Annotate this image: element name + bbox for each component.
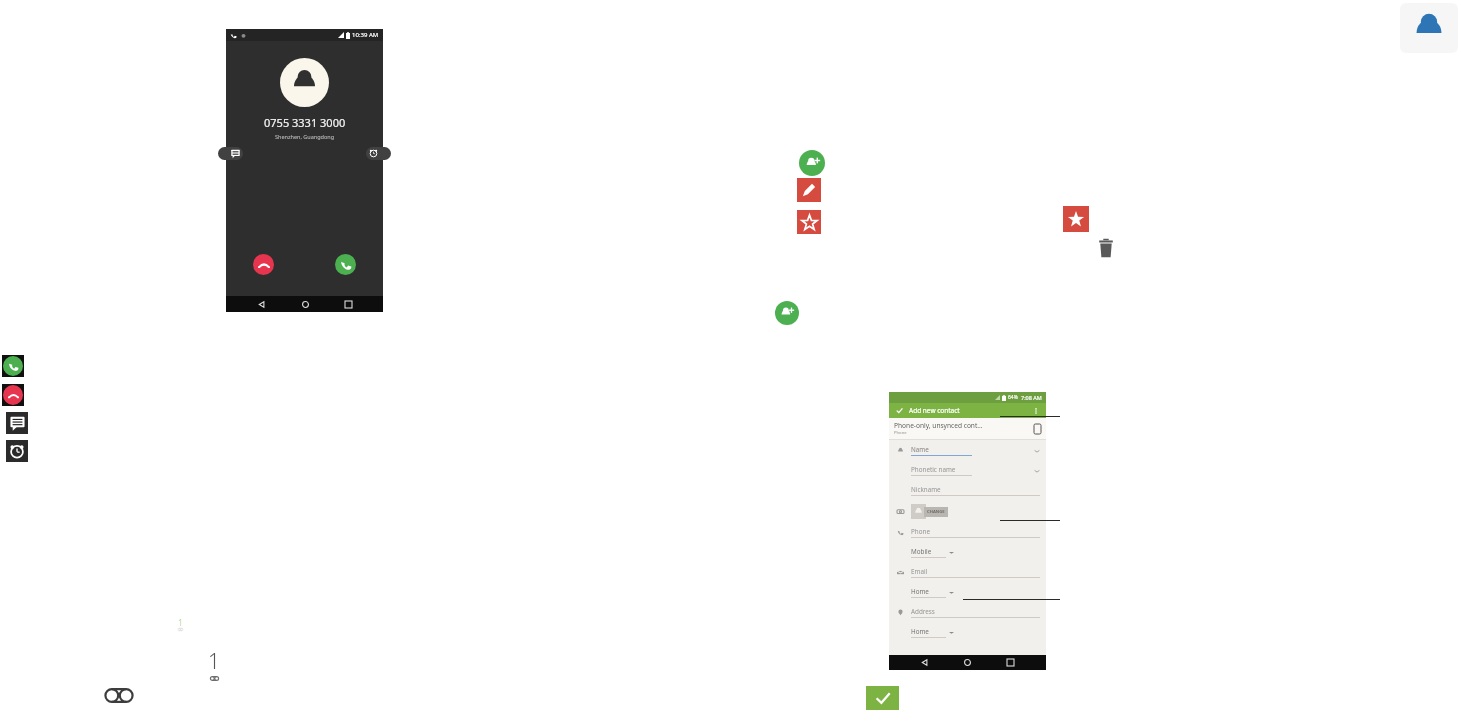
button[interactable]: Nickname — [889, 480, 1046, 500]
staticText: Add new contact — [909, 406, 960, 415]
button[interactable]: Messages — [6, 412, 28, 434]
button[interactable]: Add to favourites — [797, 210, 821, 234]
button[interactable]: End call — [2, 384, 24, 406]
button[interactable]: Phone — [889, 522, 1046, 542]
button[interactable]: Recent apps — [1003, 655, 1018, 670]
staticText: Phone — [894, 430, 907, 436]
staticText: 1 — [178, 616, 184, 628]
button[interactable]: Home — [960, 655, 975, 670]
button[interactable]: More options — [1031, 406, 1041, 416]
staticText: 7:08 AM — [1021, 394, 1042, 401]
staticText: Phonetic name — [911, 465, 956, 474]
button[interactable]: Address — [889, 602, 1046, 622]
staticText: 0755 3331 3000 — [264, 115, 346, 130]
button[interactable]: Mobile — [889, 542, 1046, 562]
staticText: 10:39 AM — [352, 31, 379, 39]
button[interactable]: Back — [253, 296, 269, 312]
staticText: Home — [911, 587, 929, 596]
button[interactable]: Contact photo — [911, 504, 926, 519]
button[interactable]: Home — [297, 296, 313, 312]
button[interactable]: Add contact — [799, 150, 825, 176]
staticText: Phone — [911, 527, 930, 536]
button[interactable]: Name — [889, 440, 1046, 460]
button[interactable]: Remind me later — [366, 147, 391, 160]
staticText: Address — [911, 607, 935, 616]
staticText: Phone-only, unsynced cont... — [894, 421, 983, 430]
button[interactable]: Home — [889, 622, 1046, 642]
button[interactable]: Delete — [1096, 236, 1116, 259]
button[interactable]: Alarm — [6, 440, 28, 462]
staticText: CHANGE — [927, 509, 945, 515]
button[interactable]: Save — [866, 686, 899, 710]
button[interactable]: Send message — [218, 147, 243, 160]
button[interactable]: Email — [889, 562, 1046, 582]
button[interactable]: Contact photo — [889, 500, 1046, 522]
staticText: Nickname — [911, 485, 941, 494]
button[interactable]: Back — [917, 655, 932, 670]
button[interactable]: Voicemail 1 — [172, 614, 188, 632]
button[interactable]: Voicemail — [101, 686, 137, 705]
button[interactable]: Call — [2, 355, 24, 377]
button[interactable]: Favourite — [1063, 206, 1089, 232]
button[interactable]: Home — [889, 582, 1046, 602]
button[interactable]: Contacts app — [1400, 3, 1458, 53]
button[interactable]: Save contact — [894, 405, 905, 416]
staticText: Name — [911, 445, 929, 454]
button[interactable]: Phonetic name — [889, 460, 1046, 480]
button[interactable]: Answer call — [335, 254, 356, 275]
staticText: Shenzhen, Guangdong — [275, 133, 335, 140]
button[interactable]: Add contact — [775, 301, 799, 325]
button[interactable]: CHANGE — [924, 507, 948, 517]
staticText: Home — [911, 627, 929, 636]
button[interactable]: Voicemail — [199, 644, 229, 684]
staticText: 64% — [1008, 394, 1018, 401]
staticText: Email — [911, 567, 928, 576]
staticText: Mobile — [911, 547, 932, 556]
staticText: 1 — [208, 647, 220, 676]
button[interactable]: Edit — [797, 178, 821, 202]
button[interactable]: Recent apps — [340, 296, 356, 312]
button[interactable]: Decline call — [253, 254, 274, 275]
